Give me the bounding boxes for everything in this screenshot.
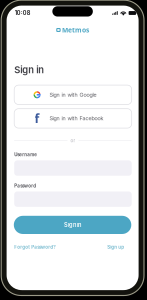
button[interactable]: Sign in with Google — [14, 85, 132, 104]
staticText: Metmos — [62, 25, 89, 35]
staticText: Username — [14, 152, 37, 157]
staticText: Forgot Password? — [14, 244, 55, 250]
button[interactable]: Sign up — [102, 244, 124, 250]
staticText: Sign in — [64, 221, 81, 228]
staticText: 10:08 — [15, 10, 31, 16]
button[interactable]: Sign in — [14, 216, 131, 234]
staticText: Password — [14, 183, 36, 188]
button[interactable]: Forgot Password? — [14, 244, 60, 250]
staticText: Sign up — [107, 244, 124, 250]
staticText: or — [70, 138, 75, 143]
staticText: Sign in with Google — [49, 92, 96, 98]
button[interactable]: f — [14, 109, 132, 128]
staticText: Sign in with Facebook — [49, 115, 103, 122]
staticText: Sign in — [14, 64, 44, 75]
staticText: f — [35, 110, 40, 127]
